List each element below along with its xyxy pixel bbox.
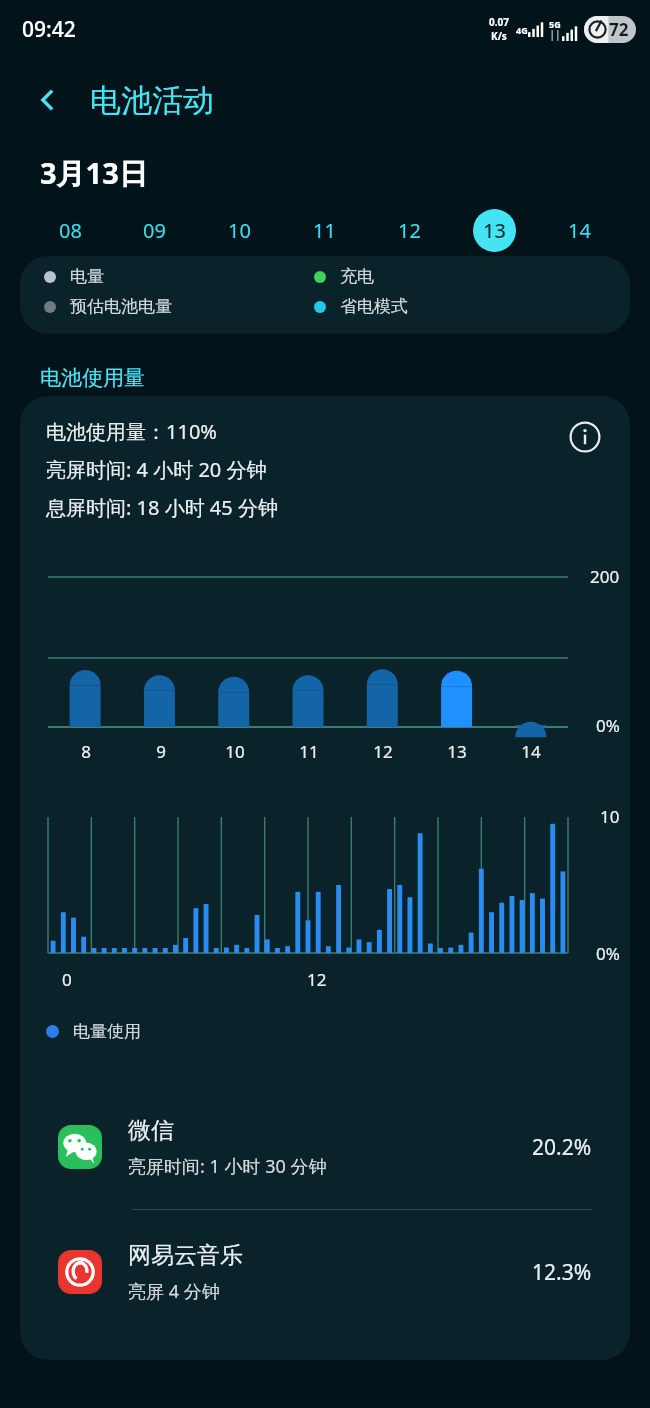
staticText: 12 [307, 968, 327, 991]
staticText: 网易云音乐 [128, 1241, 243, 1270]
button[interactable]: 09 [133, 209, 176, 252]
staticText: 10 [600, 805, 620, 828]
staticText: 电量使用 [73, 1021, 141, 1042]
staticText: 0% [596, 942, 620, 965]
staticText: 9 [156, 740, 166, 763]
staticText: 11 [313, 217, 336, 244]
staticText: 12.3% [532, 1258, 592, 1287]
staticText: 14 [521, 740, 541, 763]
staticText: 08 [59, 217, 82, 244]
staticText: 0% [596, 714, 620, 737]
staticText: 充电 [340, 266, 374, 287]
staticText: 电池使用量 [40, 365, 145, 391]
staticText: 11 [299, 740, 319, 763]
staticText: 亮屏时间: 4 小时 20 分钟 [46, 456, 267, 483]
button[interactable]: Info [562, 414, 608, 460]
staticText: 8 [81, 740, 91, 763]
staticText: 13 [447, 740, 467, 763]
button[interactable]: 11 [303, 209, 346, 252]
staticText: 14 [568, 217, 591, 244]
button[interactable]: 网易云音乐 [20, 1210, 630, 1334]
staticText: 09:42 [22, 15, 76, 44]
staticText: 微信 [128, 1116, 174, 1145]
staticText: 3月13日 [40, 153, 148, 193]
button[interactable]: 14 [558, 209, 601, 252]
staticText: 亮屏 4 分钟 [128, 1279, 220, 1304]
staticText: 20.2% [532, 1133, 592, 1162]
staticText: 电池活动 [90, 81, 214, 120]
staticText: 亮屏时间: 1 小时 30 分钟 [128, 1154, 327, 1179]
staticText: 12 [398, 217, 421, 244]
staticText: 5G [549, 18, 561, 30]
staticText: 12 [373, 740, 393, 763]
button[interactable]: Back [22, 74, 74, 126]
staticText: 10 [228, 217, 251, 244]
staticText: 09 [143, 217, 166, 244]
staticText: 电量 [70, 266, 104, 287]
staticText: K/s [491, 29, 507, 43]
button[interactable]: 10 [218, 209, 261, 252]
staticText: 预估电池电量 [70, 296, 172, 317]
staticText: 0.07 [489, 15, 509, 29]
button[interactable]: 微信 [20, 1085, 630, 1209]
button[interactable]: 13 [473, 209, 516, 252]
button[interactable]: 08 [49, 209, 92, 252]
staticText: 72 [609, 18, 629, 41]
staticText: 10 [225, 740, 245, 763]
staticText: 省电模式 [340, 296, 408, 317]
staticText: 4G [516, 24, 528, 36]
staticText: 电池使用量：110% [46, 418, 217, 445]
staticText: 200 [590, 565, 620, 588]
staticText: 0 [62, 968, 72, 991]
staticText: 13 [483, 217, 506, 244]
button[interactable]: 12 [388, 209, 431, 252]
staticText: 息屏时间: 18 小时 45 分钟 [46, 494, 278, 521]
